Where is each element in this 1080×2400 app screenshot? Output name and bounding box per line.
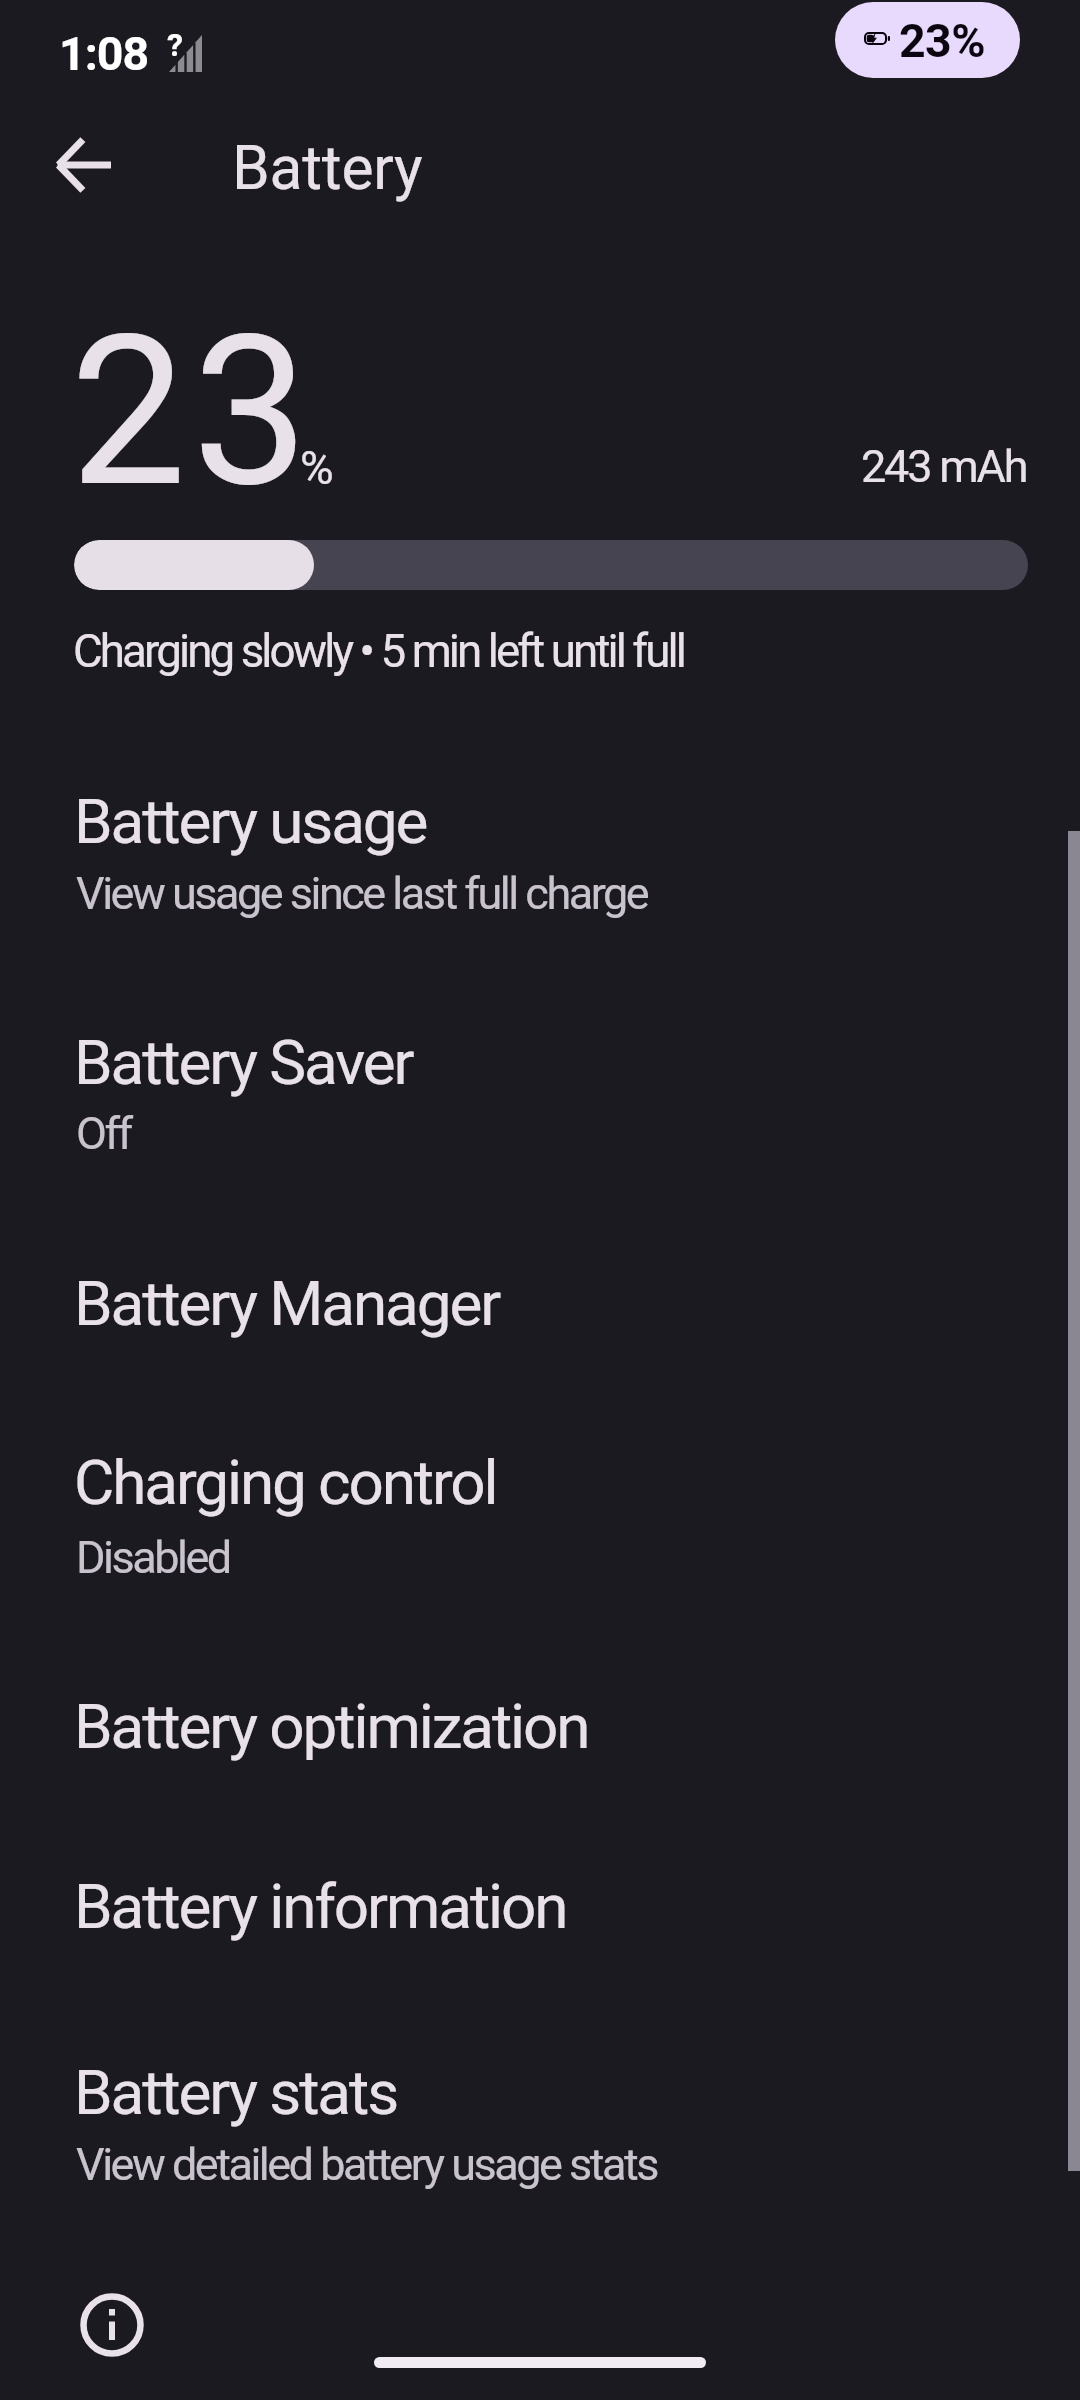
button[interactable]: Battery 23 percent, charging bbox=[835, 2, 1020, 78]
staticText: View usage since last full charge bbox=[76, 867, 648, 920]
staticText: View detailed battery usage stats bbox=[76, 2138, 657, 2191]
button[interactable]: Battery Manager bbox=[0, 1203, 1080, 1383]
button[interactable]: Battery stats bbox=[0, 1984, 1080, 2225]
staticText: Charging control bbox=[74, 1446, 497, 1519]
staticText: ? bbox=[167, 26, 183, 64]
button[interactable]: Battery usage bbox=[0, 752, 1080, 962]
staticText: 23 bbox=[70, 291, 315, 534]
button[interactable]: Battery information bbox=[0, 1804, 1080, 1984]
staticText: 1:08 bbox=[59, 27, 149, 81]
button[interactable]: Battery optimization bbox=[0, 1624, 1080, 1804]
staticText: Battery Manager bbox=[74, 1267, 500, 1340]
staticText: Charging slowly • 5 min left until full bbox=[73, 625, 685, 679]
staticText: Battery usage bbox=[74, 785, 427, 858]
staticText: Off bbox=[76, 1107, 131, 1160]
button[interactable]: Navigate up bbox=[24, 105, 144, 225]
button[interactable]: Battery information bbox=[52, 2265, 172, 2385]
staticText: Battery stats bbox=[74, 2056, 398, 2129]
staticText: Battery bbox=[232, 133, 423, 204]
staticText: 23% bbox=[899, 14, 985, 68]
button[interactable]: Battery Saver bbox=[0, 962, 1080, 1203]
staticText: Disabled bbox=[76, 1531, 230, 1584]
staticText: 243 mAh bbox=[861, 440, 1027, 493]
button[interactable]: Charging control bbox=[0, 1383, 1080, 1624]
staticText: Battery optimization bbox=[74, 1690, 589, 1763]
staticText: % bbox=[300, 441, 334, 495]
staticText: Battery information bbox=[74, 1870, 567, 1943]
staticText: Battery Saver bbox=[74, 1026, 413, 1099]
